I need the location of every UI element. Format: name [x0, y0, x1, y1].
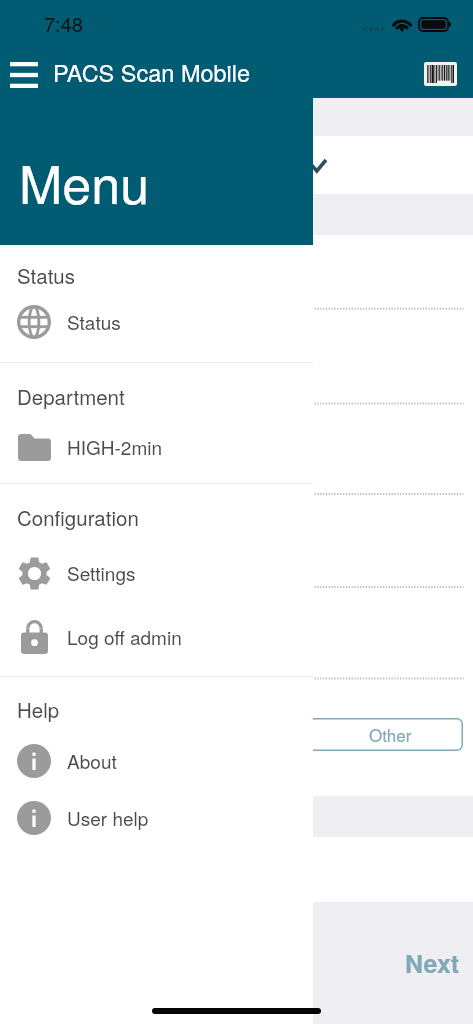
staticText: Department: [17, 381, 125, 410]
staticText: HIGH-2min: [67, 433, 163, 460]
button[interactable]: Open navigation menu: [4, 53, 44, 97]
staticText: Menu: [19, 144, 150, 218]
button[interactable]: User help: [0, 792, 313, 844]
button[interactable]: Other: [14, 718, 463, 751]
button[interactable]: Next: [0, 902, 473, 1024]
staticText: Status: [67, 308, 121, 335]
staticText: Help: [17, 694, 60, 723]
staticText: Log off admin: [67, 623, 182, 650]
staticText: 7:48: [44, 9, 83, 38]
staticText: Status: [17, 260, 76, 289]
button[interactable]: Settings: [0, 547, 313, 599]
staticText: PACS Scan Mobile: [53, 55, 251, 89]
staticText: Other: [369, 722, 412, 746]
button[interactable]: Scan barcode: [419, 53, 461, 95]
staticText: Settings: [67, 559, 136, 586]
button[interactable]: Log off admin: [0, 611, 313, 663]
button[interactable]: HIGH-2min: [0, 421, 313, 473]
staticText: Next: [405, 945, 460, 981]
button[interactable]: About: [0, 735, 313, 787]
staticText: About: [67, 747, 117, 774]
staticText: User help: [67, 804, 149, 831]
button[interactable]: Status: [0, 296, 313, 348]
staticText: Configuration: [17, 502, 139, 531]
